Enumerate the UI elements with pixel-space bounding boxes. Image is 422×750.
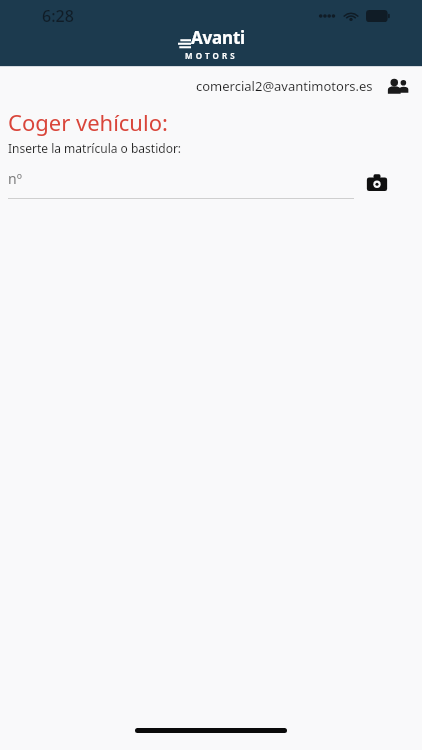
button[interactable]: Account bbox=[384, 72, 412, 100]
staticText: 6:28 bbox=[42, 5, 74, 27]
staticText: nº bbox=[8, 169, 22, 188]
staticText: MOTORS bbox=[185, 50, 238, 61]
staticText: Inserte la matrícula o bastidor: bbox=[8, 140, 182, 156]
staticText: Coger vehículo: bbox=[8, 107, 168, 137]
button[interactable]: nº bbox=[0, 166, 354, 190]
button[interactable]: Scan with camera bbox=[362, 168, 392, 198]
staticText: comercial2@avantimotors.es bbox=[196, 77, 373, 95]
staticText: Avanti bbox=[191, 26, 245, 49]
